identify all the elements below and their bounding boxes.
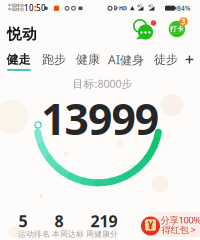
staticText: 周健康分 [86,229,118,239]
staticText: ¥ [147,218,153,232]
staticText: 分享100% [160,214,200,226]
staticText: 打卡 [170,25,184,33]
button[interactable]: 分享得红包 [135,209,200,239]
button[interactable]: 消息 [130,16,156,42]
staticText: HD [119,5,127,12]
staticText: 219 [90,210,117,232]
button[interactable]: 健康 [76,51,100,67]
staticText: 13999 [41,90,159,147]
staticText: 中国移动 [8,3,24,8]
staticText: 84% [177,4,191,13]
button[interactable]: 目标:8000步 [72,77,132,89]
staticText: 跑步 [42,52,66,67]
button[interactable]: AI健身 [108,51,144,67]
staticText: 悦动 [7,25,37,43]
staticText: 3 [181,16,186,27]
staticText: 健走 [6,52,30,67]
staticText: AI健身 [108,51,144,67]
staticText: 4G [148,3,153,8]
button[interactable]: 同步 [32,119,44,131]
staticText: 运动排名 [18,229,50,239]
staticText: 得红包 > [161,223,195,236]
staticText: 8 [54,210,63,232]
button[interactable]: 添加 [184,54,194,64]
staticText: 5 [18,210,27,232]
staticText: 中国移动 [8,7,24,12]
staticText: 本周达标 [52,229,84,239]
button[interactable]: 打卡 [167,16,191,42]
staticText: 目标:8000步 [72,76,132,91]
staticText: 健康 [76,52,100,67]
staticText: 10:50 [24,3,46,13]
staticText: 4G [137,3,142,8]
staticText: 徒步 [154,52,178,67]
button[interactable]: 徒步 [154,51,178,67]
button[interactable]: 健走 [6,51,30,67]
button[interactable]: 跑步 [42,51,66,67]
